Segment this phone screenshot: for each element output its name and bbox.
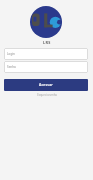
staticText: Esqueci a senha: [37, 93, 57, 97]
button[interactable]: Login: [4, 48, 88, 60]
staticText: Acessar: [39, 82, 53, 87]
button[interactable]: Esqueci a senha: [37, 93, 57, 97]
staticText: Login: [7, 52, 15, 56]
staticText: Senha: [7, 65, 16, 69]
button[interactable]: Acessar: [4, 79, 88, 91]
button[interactable]: Senha: [4, 61, 88, 73]
staticText: LRS: [43, 40, 51, 45]
